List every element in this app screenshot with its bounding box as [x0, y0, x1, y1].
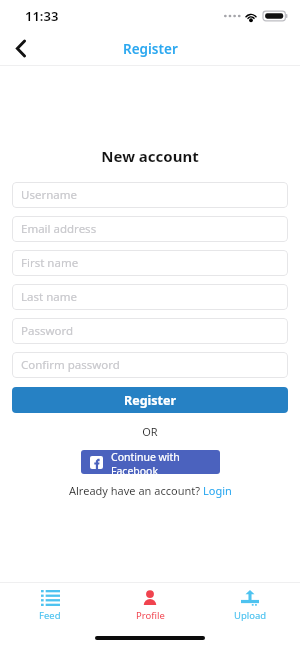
- staticText: Register: [124, 392, 177, 409]
- button[interactable]: Upload: [210, 590, 290, 622]
- staticText: Username: [21, 187, 77, 203]
- button[interactable]: Profile: [110, 590, 190, 622]
- button[interactable]: First name: [12, 250, 288, 276]
- staticText: Upload: [234, 609, 267, 622]
- button[interactable]: Username: [12, 182, 288, 208]
- staticText: Last name: [21, 289, 77, 305]
- button[interactable]: Confirm password: [12, 352, 288, 378]
- button[interactable]: Feed: [10, 590, 90, 622]
- staticText: Email address: [21, 221, 97, 237]
- staticText: OR: [0, 424, 300, 439]
- staticText: Password: [21, 323, 74, 339]
- staticText: Login: [203, 483, 232, 498]
- button[interactable]: Login: [203, 483, 232, 498]
- staticText: Feed: [39, 609, 61, 622]
- button[interactable]: Password: [12, 318, 288, 344]
- staticText: Profile: [136, 609, 165, 622]
- button[interactable]: Continue with Facebook: [81, 450, 220, 474]
- button[interactable]: Register: [12, 387, 288, 413]
- staticText: 11:33: [25, 7, 59, 25]
- staticText: Register: [123, 40, 178, 58]
- staticText: Confirm password: [21, 357, 120, 373]
- button[interactable]: Email address: [12, 216, 288, 242]
- staticText: Continue with Facebook: [111, 450, 220, 474]
- staticText: Already have an account?: [69, 483, 203, 498]
- staticText: New account: [0, 146, 300, 166]
- button[interactable]: Last name: [12, 284, 288, 310]
- button[interactable]: Back: [4, 32, 38, 65]
- staticText: First name: [21, 255, 79, 271]
